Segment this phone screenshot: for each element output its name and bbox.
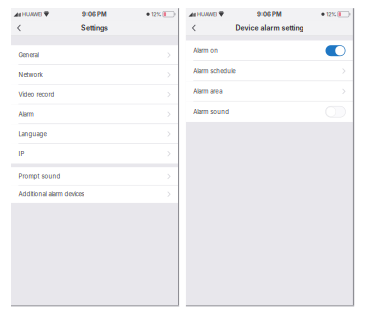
staticText: Alarm — [18, 111, 33, 118]
button[interactable]: Back — [186, 21, 202, 35]
staticText: Alarm schedule — [193, 67, 235, 75]
staticText: HUAWEI — [197, 11, 217, 17]
button[interactable]: Alarm schedule — [186, 61, 353, 81]
staticText: 12% — [151, 11, 161, 17]
staticText: Device alarm setting — [235, 24, 303, 32]
button[interactable]: Language — [11, 124, 178, 144]
button[interactable]: Alarm area — [186, 81, 353, 102]
staticText: Network — [18, 71, 42, 78]
button[interactable]: Additional alarm devices — [11, 186, 178, 203]
button[interactable]: IP — [11, 144, 178, 164]
staticText: IP — [18, 150, 24, 157]
button[interactable]: Alarm — [11, 104, 178, 124]
staticText: Prompt sound — [18, 173, 60, 180]
button[interactable]: Prompt sound — [11, 167, 178, 186]
button[interactable]: Alarm on — [186, 40, 353, 61]
staticText: Language — [18, 130, 46, 138]
button[interactable]: Network — [11, 65, 178, 85]
staticText: Alarm area — [193, 88, 222, 95]
button[interactable]: General — [11, 45, 178, 65]
staticText: General — [18, 51, 38, 59]
staticText: Alarm sound — [193, 108, 229, 115]
staticText: Alarm on — [193, 47, 218, 54]
button[interactable]: Video record — [11, 85, 178, 104]
button[interactable]: Back — [11, 21, 27, 35]
staticText: HUAWEI — [22, 11, 42, 17]
staticText: Additional alarm devices — [18, 191, 84, 198]
button[interactable]: Alarm sound — [186, 102, 353, 122]
staticText: 12% — [326, 11, 336, 17]
staticText: Settings — [81, 24, 108, 32]
staticText: 9:06 PM — [257, 11, 282, 18]
staticText: 9:06 PM — [82, 11, 107, 18]
staticText: Video record — [18, 91, 54, 98]
